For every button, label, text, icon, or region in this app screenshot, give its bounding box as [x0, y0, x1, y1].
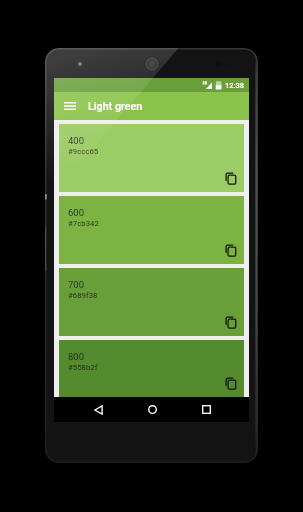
staticText: 800: [68, 351, 85, 362]
button[interactable]: Copy colour value: [224, 170, 236, 184]
button[interactable]: Copy colour value: [224, 314, 236, 328]
button[interactable]: Recent apps: [186, 397, 226, 422]
staticText: Light green: [88, 100, 143, 113]
staticText: #558b2f: [68, 363, 98, 372]
button[interactable]: 600: [59, 196, 244, 264]
staticText: #689f38: [68, 291, 98, 300]
staticText: 12:38: [225, 81, 245, 90]
staticText: #9ccc65: [68, 147, 99, 156]
staticText: #7cb342: [68, 219, 99, 228]
button[interactable]: Open navigation drawer: [54, 92, 86, 120]
button[interactable]: 400: [59, 124, 244, 192]
staticText: 600: [68, 207, 85, 218]
button[interactable]: Copy colour value: [224, 375, 236, 389]
button[interactable]: Copy colour value: [224, 242, 236, 256]
button[interactable]: 700: [59, 268, 244, 336]
staticText: 400: [68, 135, 85, 146]
button[interactable]: Back: [78, 397, 118, 422]
button[interactable]: Home: [132, 397, 172, 422]
button[interactable]: 800: [59, 340, 244, 397]
staticText: 700: [68, 279, 85, 290]
